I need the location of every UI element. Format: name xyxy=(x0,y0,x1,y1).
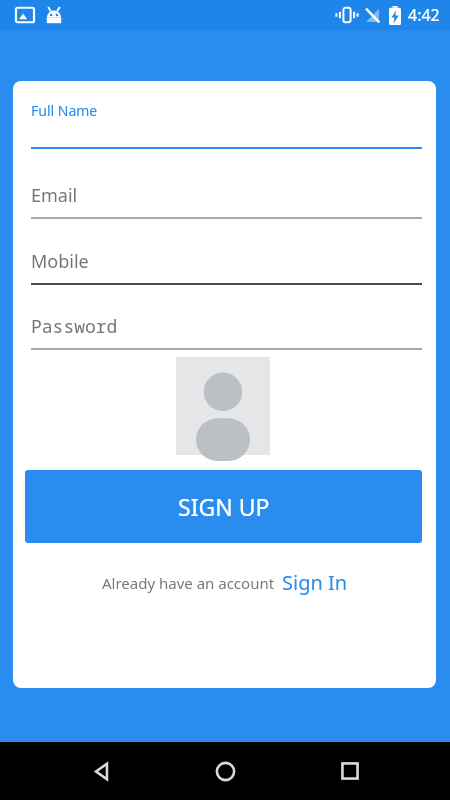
staticText: Full Name xyxy=(31,101,98,120)
button[interactable]: Profile photo xyxy=(176,357,270,455)
staticText: Mobile xyxy=(31,249,89,274)
button[interactable]: Home xyxy=(201,747,249,795)
button[interactable]: Email xyxy=(31,181,422,219)
staticText: Password xyxy=(31,314,118,339)
staticText: Email xyxy=(31,183,78,208)
staticText: Sign In xyxy=(282,569,348,596)
button[interactable]: Password xyxy=(31,312,422,350)
button[interactable]: Full Name xyxy=(31,92,422,149)
button[interactable]: Back xyxy=(77,747,125,795)
staticText: Already have an account xyxy=(102,573,275,593)
button[interactable]: Recent apps xyxy=(326,747,374,795)
staticText: 4:42 xyxy=(408,4,440,26)
staticText: SIGN UP xyxy=(178,491,270,522)
button[interactable]: Sign In xyxy=(282,569,348,596)
button[interactable]: SIGN UP xyxy=(25,470,422,543)
button[interactable]: Mobile xyxy=(31,247,422,285)
